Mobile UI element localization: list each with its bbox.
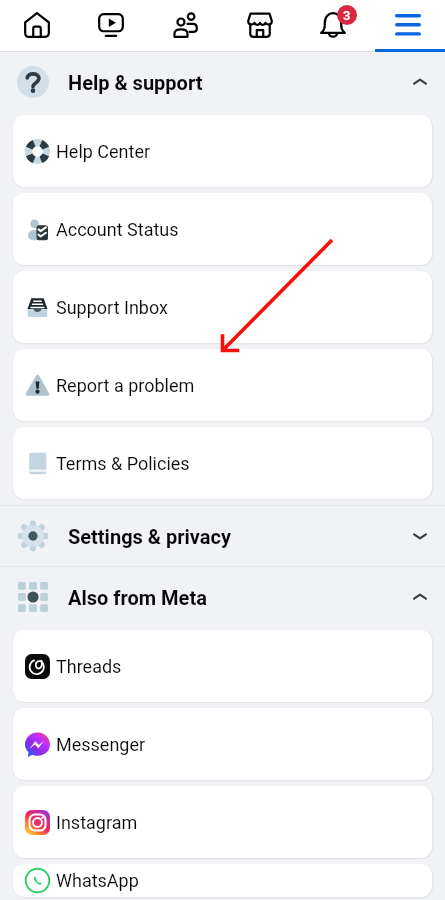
- button[interactable]: Home: [9, 0, 65, 50]
- staticText: Account Status: [56, 219, 179, 240]
- staticText: Also from Meta: [68, 586, 207, 609]
- staticText: Settings & privacy: [68, 525, 231, 548]
- button[interactable]: Report a problem: [13, 349, 432, 421]
- staticText: Terms & Policies: [56, 453, 190, 474]
- staticText: Instagram: [56, 812, 138, 833]
- button[interactable]: Instagram: [13, 786, 432, 858]
- button[interactable]: Also from Meta: [0, 567, 445, 627]
- button[interactable]: Help & support: [0, 52, 445, 112]
- button[interactable]: Account Status: [13, 193, 432, 265]
- button[interactable]: Friends: [157, 0, 213, 50]
- staticText: Help Center: [56, 141, 151, 162]
- button[interactable]: Video: [83, 0, 139, 50]
- button[interactable]: Menu: [380, 0, 436, 50]
- button[interactable]: Terms & Policies: [13, 427, 432, 499]
- staticText: Messenger: [56, 734, 146, 755]
- button[interactable]: Marketplace: [232, 0, 288, 50]
- button[interactable]: WhatsApp: [13, 864, 432, 897]
- button[interactable]: Threads: [13, 630, 432, 702]
- button[interactable]: Support Inbox: [13, 271, 432, 343]
- staticText: Report a problem: [56, 375, 195, 396]
- button[interactable]: Notifications: [305, 0, 361, 50]
- button[interactable]: Settings & privacy: [0, 506, 445, 566]
- staticText: Support Inbox: [56, 297, 168, 318]
- button[interactable]: Messenger: [13, 708, 432, 780]
- staticText: 3: [343, 8, 351, 23]
- button[interactable]: Help Center: [13, 115, 432, 187]
- staticText: Help & support: [68, 71, 203, 94]
- staticText: Threads: [56, 656, 122, 677]
- staticText: WhatsApp: [56, 870, 139, 891]
